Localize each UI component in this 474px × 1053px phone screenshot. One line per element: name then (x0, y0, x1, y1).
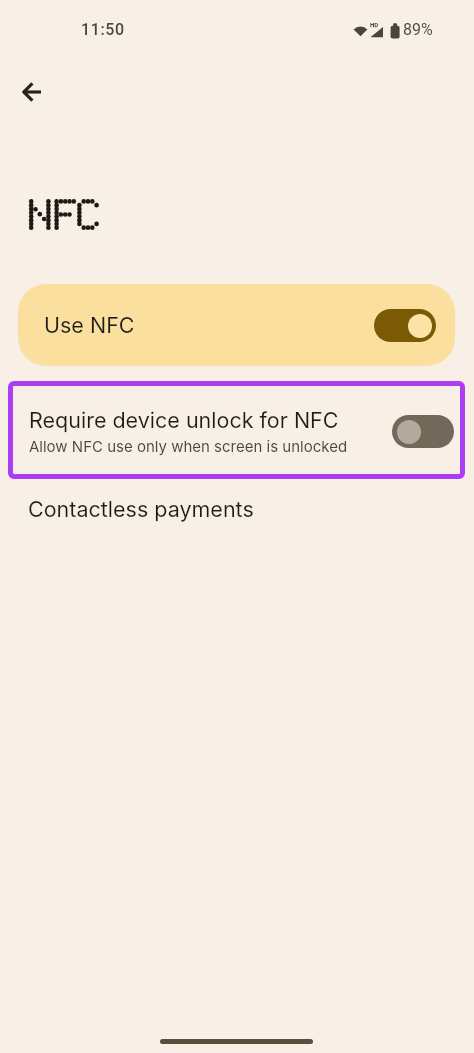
staticText: Allow NFC use only when screen is unlock… (29, 437, 348, 455)
button[interactable] (392, 415, 454, 448)
button[interactable] (8, 381, 465, 479)
button[interactable]: Use NFC (18, 284, 455, 366)
staticText: Use NFC (44, 312, 135, 338)
staticText: 89% (403, 20, 433, 39)
button[interactable] (374, 309, 436, 342)
staticText: 11:50 (81, 20, 125, 39)
staticText: HD (370, 21, 379, 28)
staticText: Contactless payments (28, 496, 254, 522)
staticText: Require device unlock for NFC (29, 407, 339, 433)
button[interactable] (18, 484, 455, 540)
button[interactable] (8, 76, 56, 108)
